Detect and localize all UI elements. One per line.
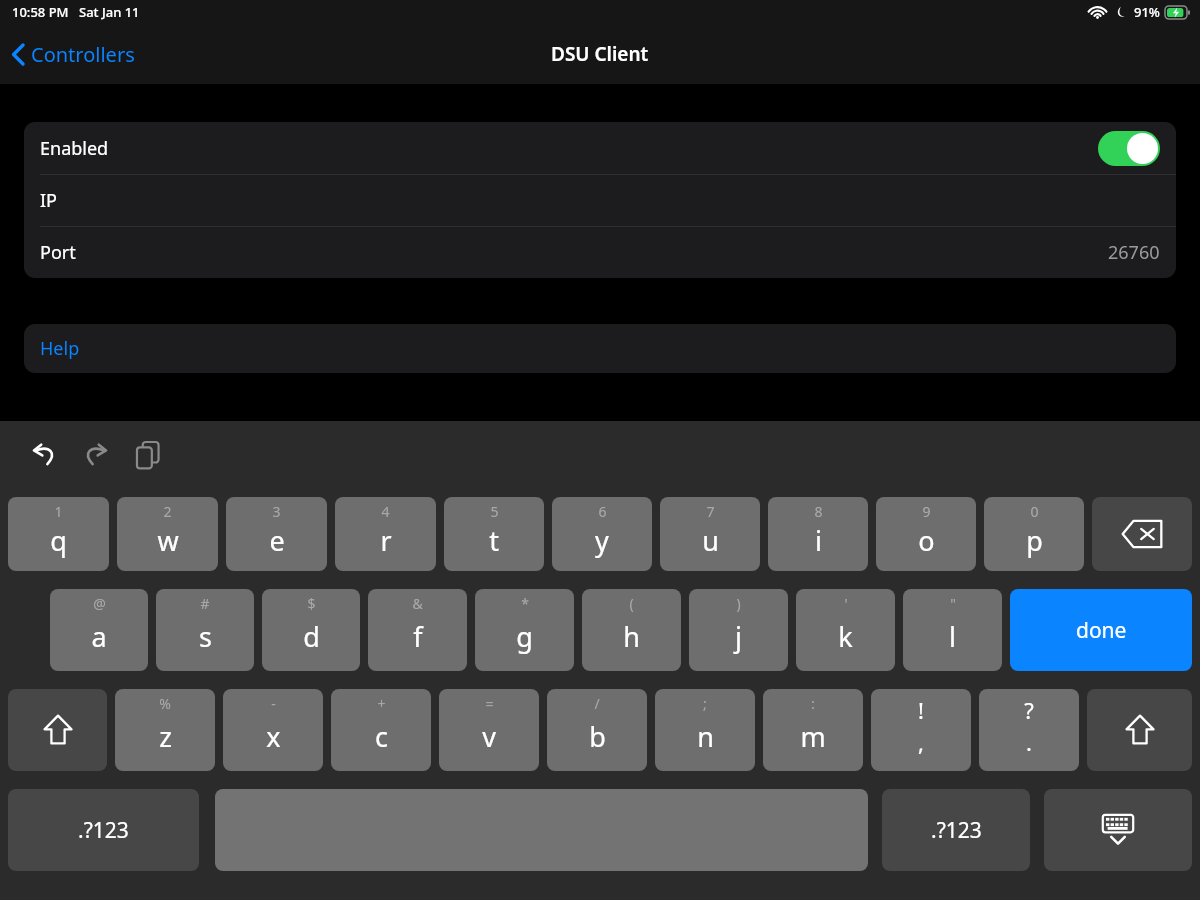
button[interactable]: - (223, 689, 323, 771)
button[interactable]: ' (796, 589, 895, 671)
staticText: " (950, 594, 956, 613)
staticText: IP (40, 188, 57, 213)
button[interactable]: Enabled (24, 122, 1176, 174)
button[interactable]: Shift (1087, 689, 1192, 771)
staticText: DSU Client (551, 41, 649, 67)
staticText: 7 (706, 502, 715, 521)
staticText: z (159, 718, 172, 755)
staticText: 8 (814, 502, 823, 521)
staticText: done (1076, 616, 1127, 645)
button[interactable]: 9 (876, 497, 976, 571)
button[interactable]: 6 (552, 497, 652, 571)
staticText: * (521, 594, 529, 613)
button[interactable]: 0 (984, 497, 1084, 571)
staticText: @ (93, 594, 106, 613)
button[interactable]: Enabled toggle (1098, 131, 1160, 166)
button[interactable]: ! (871, 689, 971, 771)
staticText: Port (40, 240, 76, 265)
staticText: e (269, 522, 285, 559)
button[interactable]: 8 (768, 497, 868, 571)
staticText: l (949, 618, 956, 655)
button[interactable]: % (115, 689, 215, 771)
button[interactable]: .?123 (882, 789, 1030, 871)
button[interactable]: Backspace (1092, 497, 1192, 571)
staticText: : (811, 694, 815, 713)
staticText: 10:58 PM (12, 3, 69, 21)
button[interactable]: @ (50, 589, 148, 671)
staticText: s (199, 618, 212, 655)
staticText: ' (844, 594, 848, 613)
button[interactable]: 4 (335, 497, 436, 571)
staticText: m (800, 718, 826, 755)
staticText: p (1026, 522, 1043, 559)
staticText: 91% (1134, 3, 1160, 21)
staticText: f (413, 618, 423, 655)
staticText: x (266, 718, 281, 755)
button[interactable]: Shift (8, 689, 107, 771)
button[interactable]: 1 (8, 497, 109, 571)
staticText: j (735, 618, 742, 655)
button[interactable]: 3 (226, 497, 327, 571)
staticText: . (1026, 727, 1032, 757)
button[interactable]: Controllers (0, 33, 147, 76)
staticText: - (271, 694, 276, 713)
button[interactable]: : (763, 689, 863, 771)
staticText: d (303, 618, 320, 655)
staticText: ? (1024, 695, 1034, 725)
button[interactable]: + (331, 689, 431, 771)
staticText: ) (736, 594, 741, 613)
staticText: b (589, 718, 606, 755)
staticText: v (482, 718, 496, 755)
staticText: o (918, 522, 935, 559)
button[interactable]: done (1010, 589, 1192, 671)
button[interactable]: .?123 (8, 789, 199, 871)
staticText: & (412, 594, 423, 613)
staticText: Sat Jan 11 (79, 3, 140, 21)
staticText: / (594, 694, 600, 713)
staticText: 9 (922, 502, 931, 521)
button[interactable]: Hide keyboard (1044, 789, 1192, 871)
button[interactable]: ; (655, 689, 755, 771)
staticText: % (159, 694, 171, 713)
button[interactable]: ) (689, 589, 788, 671)
staticText: Help (40, 336, 80, 361)
button[interactable]: Paste (126, 433, 170, 477)
staticText: + (377, 694, 386, 713)
button[interactable]: $ (262, 589, 360, 671)
staticText: # (200, 594, 210, 613)
button[interactable]: 2 (117, 497, 218, 571)
button[interactable]: ? (979, 689, 1079, 771)
staticText: i (815, 522, 822, 559)
staticText: Enabled (40, 136, 109, 161)
button[interactable]: = (439, 689, 539, 771)
button[interactable]: / (547, 689, 647, 771)
button[interactable]: Undo (22, 433, 66, 477)
staticText: u (702, 522, 719, 559)
staticText: g (516, 618, 533, 655)
button[interactable]: " (903, 589, 1002, 671)
button[interactable]: Redo (74, 433, 118, 477)
button[interactable]: IP (24, 175, 1176, 226)
button[interactable]: 5 (444, 497, 544, 571)
staticText: , (918, 727, 924, 757)
button[interactable]: 7 (660, 497, 760, 571)
staticText: h (623, 618, 640, 655)
button[interactable]: & (368, 589, 467, 671)
staticText: ( (629, 594, 634, 613)
button[interactable]: Help (24, 324, 1176, 373)
staticText: r (380, 522, 392, 559)
staticText: 2 (163, 502, 172, 521)
staticText: 3 (272, 502, 281, 521)
staticText: c (375, 718, 388, 755)
button[interactable]: * (475, 589, 574, 671)
staticText: ; (703, 694, 707, 713)
button[interactable]: ( (582, 589, 681, 671)
staticText: $ (307, 594, 316, 613)
staticText: t (489, 522, 499, 559)
staticText: 5 (490, 502, 499, 521)
staticText: 6 (598, 502, 607, 521)
button[interactable]: Port (24, 227, 1176, 278)
staticText: .?123 (931, 816, 982, 845)
button[interactable]: # (156, 589, 254, 671)
